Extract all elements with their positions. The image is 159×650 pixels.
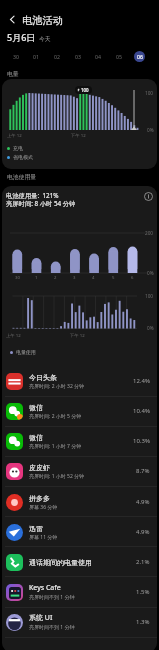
staticText: 今日头条: [29, 373, 57, 382]
staticText: 充电: [13, 145, 23, 151]
staticText: 电量使用: [16, 349, 36, 355]
staticText: 省电模式: [13, 154, 33, 160]
staticText: 今天: [39, 35, 51, 42]
staticText: 30: [13, 53, 19, 60]
staticText: 皮皮虾: [29, 463, 50, 472]
button[interactable]: 03: [67, 46, 87, 66]
staticText: 微信: [29, 433, 43, 442]
staticText: Keys Cafe: [29, 583, 61, 593]
staticText: 2: [54, 274, 57, 280]
staticText: 拼多多: [29, 494, 50, 503]
staticText: 100: [145, 90, 154, 96]
staticText: 10.4%: [133, 407, 150, 415]
button[interactable]: 今日头条: [2, 366, 157, 396]
staticText: 电池使用量: [7, 173, 36, 180]
button[interactable]: 06: [129, 46, 149, 66]
staticText: 2.1%: [136, 558, 150, 566]
staticText: 02: [54, 53, 60, 60]
staticText: 电量: [7, 70, 19, 77]
button[interactable]: Back: [3, 10, 22, 29]
staticText: 12.4%: [133, 377, 150, 385]
staticText: 亮屏时间不到 1 分钟: [29, 624, 75, 631]
staticText: 06: [137, 53, 143, 60]
button[interactable]: 微信: [2, 396, 157, 426]
staticText: 亮屏时间: 8 小时 54 分钟: [6, 199, 76, 208]
button[interactable]: Information: [141, 189, 155, 203]
staticText: 200: [145, 230, 154, 236]
button[interactable]: 微信: [2, 426, 157, 456]
staticText: 8.7%: [136, 467, 150, 475]
staticText: 下午 12: [70, 332, 85, 338]
staticText: 1.3%: [136, 618, 150, 626]
staticText: 微信: [29, 403, 43, 412]
staticText: 亮屏时间: 2 小时 5 分钟: [29, 413, 82, 420]
staticText: 4: [92, 274, 95, 280]
staticText: 5月6日: [7, 31, 36, 43]
staticText: 0%: [147, 270, 154, 276]
staticText: 100: [81, 87, 89, 93]
staticText: 上午 12: [6, 332, 21, 338]
staticText: 亮屏时间: 2 小时 32 分钟: [29, 383, 85, 390]
staticText: 屏幕 36 分钟: [29, 504, 58, 511]
button[interactable]: 01: [25, 46, 45, 66]
staticText: 30: [15, 274, 20, 280]
button[interactable]: 30: [5, 46, 25, 66]
button[interactable]: 04: [87, 46, 107, 66]
staticText: 01: [33, 53, 39, 60]
staticText: 下午 12: [71, 132, 86, 138]
staticText: 亮屏时间不到 1 分钟: [29, 594, 75, 601]
button[interactable]: 02: [46, 46, 66, 66]
button[interactable]: Keys Cafe: [2, 577, 157, 607]
staticText: 4.9%: [136, 528, 150, 536]
button[interactable]: 系统 UI: [2, 607, 157, 637]
button[interactable]: 拼多多: [2, 487, 157, 517]
staticText: 电池活动: [22, 14, 64, 27]
staticText: 05: [116, 53, 122, 60]
staticText: 系统 UI: [29, 613, 53, 623]
staticText: 亮屏时间: 1 小时 7 分钟: [29, 443, 82, 450]
staticText: 亮屏时间: 1 小时 52 分钟: [29, 473, 85, 480]
staticText: 电池使用量: 121%: [6, 191, 59, 200]
button[interactable]: 迅雷: [2, 517, 157, 547]
staticText: 10.3%: [133, 437, 150, 445]
staticText: 1.5%: [136, 588, 150, 596]
staticText: 迅雷: [29, 524, 43, 533]
staticText: 6: [131, 274, 134, 280]
staticText: 03: [75, 53, 81, 60]
button[interactable]: 皮皮虾: [2, 456, 157, 486]
staticText: 1: [35, 274, 38, 280]
staticText: 屏幕 11 分钟: [29, 534, 58, 541]
staticText: 0%: [147, 127, 154, 133]
staticText: 通话期间的电量使用: [29, 558, 92, 567]
staticText: 4.9%: [136, 498, 150, 506]
staticText: 上午 12: [7, 132, 22, 138]
staticText: 5: [112, 274, 115, 280]
staticText: 3: [73, 274, 76, 280]
staticText: 04: [95, 53, 101, 60]
staticText: 0%: [147, 325, 154, 331]
button[interactable]: 05: [108, 46, 128, 66]
button[interactable]: 通话期间的电量使用: [2, 547, 157, 577]
staticText: 100: [145, 293, 154, 299]
